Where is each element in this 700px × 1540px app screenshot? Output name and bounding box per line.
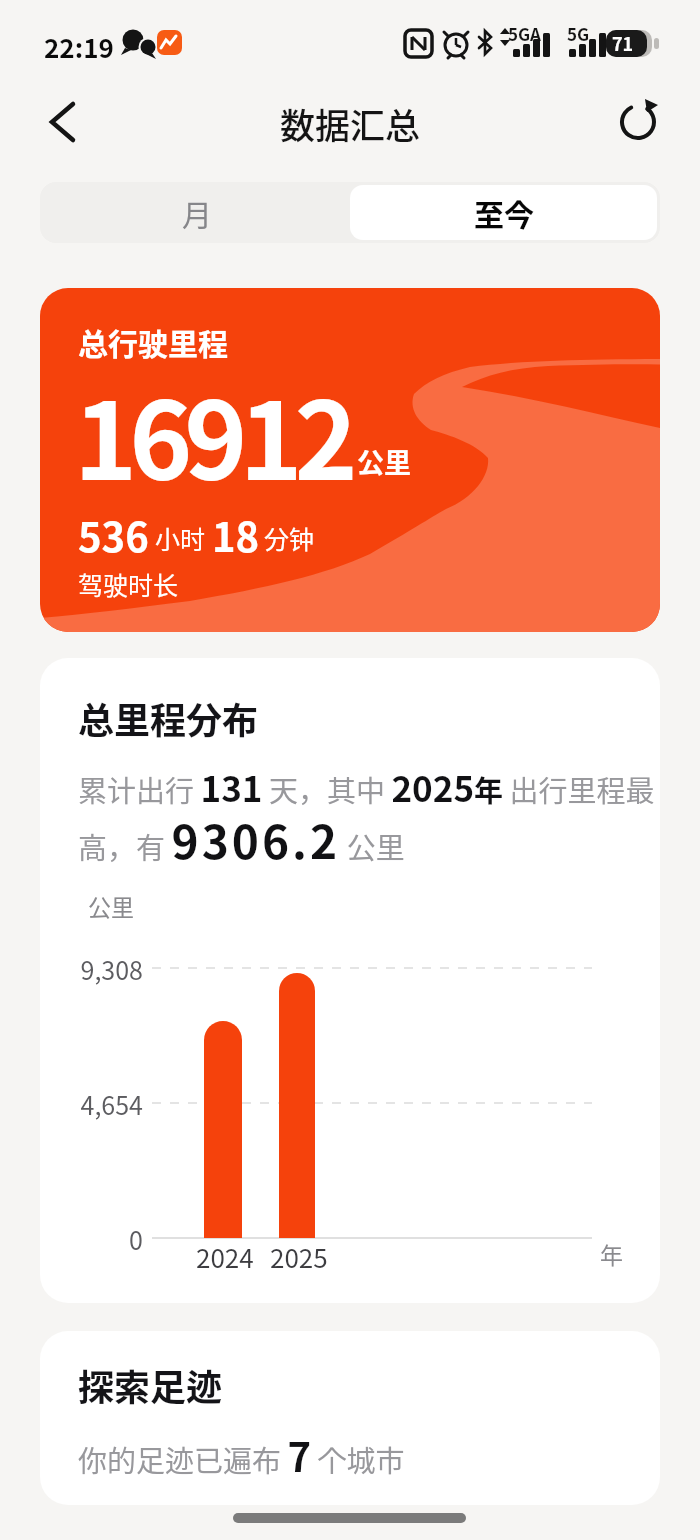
button[interactable]: 月	[43, 185, 350, 240]
staticText: 18	[212, 506, 260, 564]
button[interactable]	[36, 96, 88, 148]
button[interactable]	[612, 96, 664, 148]
staticText: 2025	[270, 1238, 328, 1276]
staticText: 探索足迹	[78, 1359, 223, 1411]
staticText: 2024	[196, 1238, 254, 1276]
staticText: 0	[40, 1221, 143, 1303]
staticText: 分钟	[264, 520, 315, 556]
staticText: 公里	[88, 889, 134, 922]
button[interactable]: 总里程分布	[40, 658, 660, 1303]
staticText: 至今	[474, 191, 534, 234]
staticText: 22:19	[44, 28, 114, 66]
button[interactable]: 至今	[350, 185, 657, 240]
staticText: 高，有 9306.2 公里	[78, 806, 660, 873]
button[interactable]: 探索足迹	[40, 1331, 660, 1505]
staticText: 5GA	[508, 21, 541, 46]
staticText: 数据汇总	[280, 98, 421, 149]
staticText: 你的足迹已遍布 7 个城市	[78, 1426, 660, 1484]
staticText: 5G	[567, 21, 590, 46]
staticText: 71	[612, 30, 634, 56]
staticText: 小时	[155, 520, 206, 556]
button[interactable]: 总行驶里程	[40, 288, 660, 632]
staticText: 总里程分布	[78, 692, 259, 744]
staticText: 累计出行 131 天，其中 2025年 出行里程最	[78, 761, 660, 812]
staticText: 总行驶里程	[78, 320, 228, 363]
staticText: 536	[78, 506, 149, 564]
staticText: 公里	[357, 442, 411, 481]
staticText: 4,654	[40, 1086, 143, 1303]
staticText: 9,308	[40, 951, 143, 1303]
staticText: 年	[600, 1237, 623, 1270]
staticText: 驾驶时长	[78, 566, 179, 602]
staticText: 16912	[74, 356, 350, 511]
staticText: 月	[182, 191, 212, 234]
